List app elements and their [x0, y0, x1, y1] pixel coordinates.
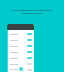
button[interactable]: Add — [19, 67, 23, 71]
staticText: Lorem ipsum dolor sit amet consectetur a… — [9, 9, 55, 14]
